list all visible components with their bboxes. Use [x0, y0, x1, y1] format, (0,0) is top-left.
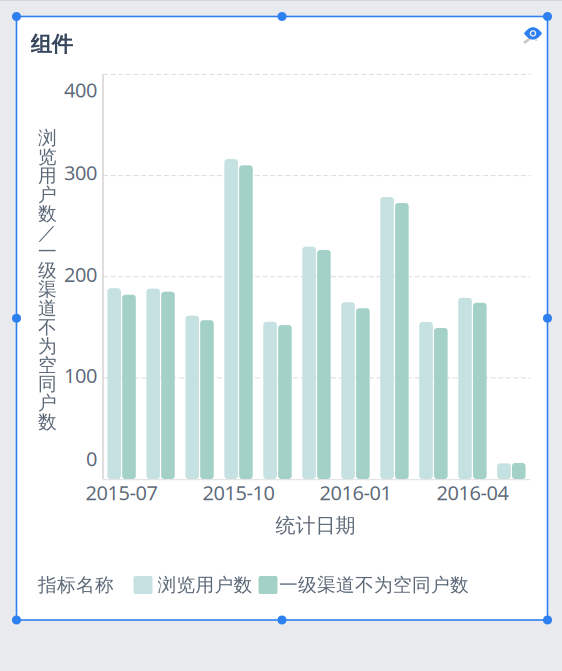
staticText: 0: [86, 445, 97, 472]
staticText: 浏: [38, 127, 57, 149]
staticText: 组件: [30, 31, 72, 57]
staticText: 渠: [38, 278, 57, 301]
staticText: 不: [38, 316, 57, 339]
staticText: 用: [38, 164, 57, 187]
staticText: 户: [38, 183, 57, 206]
staticText: 为: [38, 335, 57, 358]
staticText: 一: [38, 240, 57, 263]
staticText: ／: [38, 221, 57, 244]
staticText: 览: [38, 145, 57, 168]
staticText: 100: [64, 362, 97, 388]
staticText: 数: [38, 202, 57, 225]
staticText: 2015-07: [86, 479, 158, 506]
staticText: 统计日期: [275, 513, 355, 538]
staticText: 浏览用户数: [157, 573, 252, 596]
staticText: 级: [38, 259, 57, 282]
staticText: 道: [38, 297, 57, 320]
staticText: 数: [38, 410, 57, 433]
staticText: 2016-04: [436, 479, 508, 506]
staticText: 指标名称: [38, 573, 114, 596]
staticText: 200: [64, 261, 97, 287]
staticText: 空: [38, 354, 57, 377]
button[interactable]: Preview: [521, 23, 545, 49]
staticText: 同: [38, 373, 57, 395]
staticText: 户: [38, 392, 57, 414]
staticText: 2016-01: [319, 479, 391, 506]
staticText: 一级渠道不为空同户数: [279, 573, 469, 596]
staticText: 400: [64, 76, 97, 103]
staticText: 300: [64, 159, 97, 186]
staticText: 2015-10: [202, 479, 274, 506]
